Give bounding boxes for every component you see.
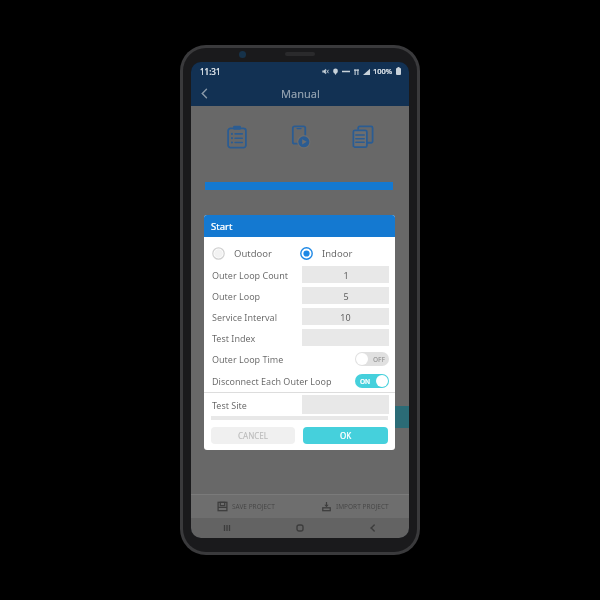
button[interactable]: Documents xyxy=(346,120,380,154)
staticText: 100% xyxy=(373,66,393,76)
staticText: OK xyxy=(340,430,352,441)
button[interactable]: Service Interval xyxy=(204,306,395,327)
button[interactable]: SAVE PROJECT xyxy=(191,494,300,518)
button[interactable]: Back xyxy=(336,518,409,538)
button[interactable]: Outdoor xyxy=(212,247,300,260)
button[interactable]: Outer Loop Time xyxy=(212,348,389,370)
button[interactable]: Report list xyxy=(220,120,254,154)
staticText: Service Interval xyxy=(212,311,302,323)
button[interactable]: Disconnect Each Outer Loop xyxy=(212,370,389,392)
button[interactable]: Test Site xyxy=(204,393,395,416)
staticText: 10 xyxy=(340,311,351,323)
staticText: Outer Loop Interval(s xyxy=(212,290,302,302)
button[interactable]: CANCEL xyxy=(211,427,295,444)
button[interactable]: OK xyxy=(303,427,388,444)
staticText: Start xyxy=(211,220,233,233)
staticText: Indoor xyxy=(322,247,353,260)
staticText: OFF xyxy=(373,355,385,364)
staticText: Test Index xyxy=(212,332,302,344)
staticText: Disconnect Each Outer Loop xyxy=(212,375,355,387)
staticText: 1 xyxy=(343,269,349,281)
staticText: 11:31 xyxy=(200,66,221,77)
button[interactable]: Indoor xyxy=(300,247,389,260)
staticText: ON xyxy=(360,377,371,386)
staticText: SAVE PROJECT xyxy=(232,502,275,511)
staticText: Manual xyxy=(281,86,320,101)
staticText: Test Site xyxy=(212,399,302,411)
button[interactable]: Outer Loop Count xyxy=(204,264,395,285)
button[interactable]: Back xyxy=(191,80,217,106)
staticText: Outer Loop Time xyxy=(212,353,355,365)
button[interactable]: Recents xyxy=(191,518,263,538)
button[interactable]: Outer Loop Interval(s xyxy=(204,285,395,306)
staticText: CANCEL xyxy=(238,430,268,441)
staticText: IMPORT PROJECT xyxy=(336,502,389,511)
button[interactable]: Home xyxy=(263,518,336,538)
button[interactable]: Test Index xyxy=(204,327,395,348)
staticText: Outdoor xyxy=(234,247,272,260)
button[interactable]: Run test xyxy=(283,120,317,154)
staticText: 5 xyxy=(343,290,349,302)
staticText: Outer Loop Count xyxy=(212,269,302,281)
button[interactable]: IMPORT PROJECT xyxy=(300,494,409,518)
